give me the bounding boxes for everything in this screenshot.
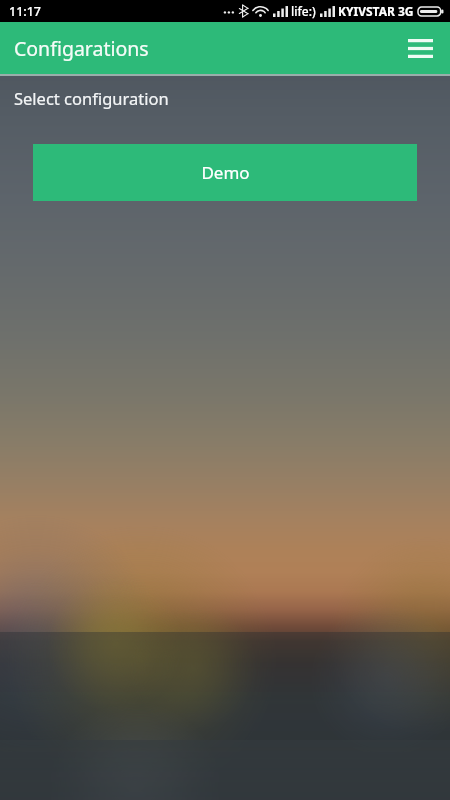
staticText: Demo (201, 161, 250, 184)
button[interactable]: Demo (33, 144, 417, 201)
staticText: Configarations (14, 35, 149, 62)
staticText: 11:17 (9, 3, 42, 20)
staticText: life:) (291, 3, 316, 19)
staticText: Select configuration (14, 87, 169, 109)
staticText: KYIVSTAR 3G (338, 3, 414, 19)
button[interactable]: Open navigation menu (398, 26, 442, 70)
